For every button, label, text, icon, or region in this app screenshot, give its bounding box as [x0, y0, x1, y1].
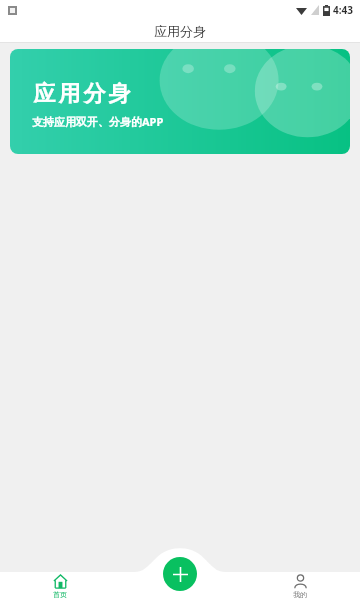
button[interactable]: 应用分身 — [10, 49, 350, 154]
staticText: 应用分身 — [154, 23, 206, 39]
button[interactable]: 首页 — [0, 555, 120, 600]
button[interactable]: 我的 — [240, 555, 360, 600]
staticText: 我的 — [293, 590, 307, 599]
staticText: 4:43 — [333, 3, 353, 17]
button[interactable]: Add app clone — [163, 557, 197, 591]
staticText: 应用分身 — [32, 80, 132, 108]
staticText: 首页 — [53, 590, 67, 599]
staticText: 支持应用双开、分身的APP — [32, 114, 164, 129]
